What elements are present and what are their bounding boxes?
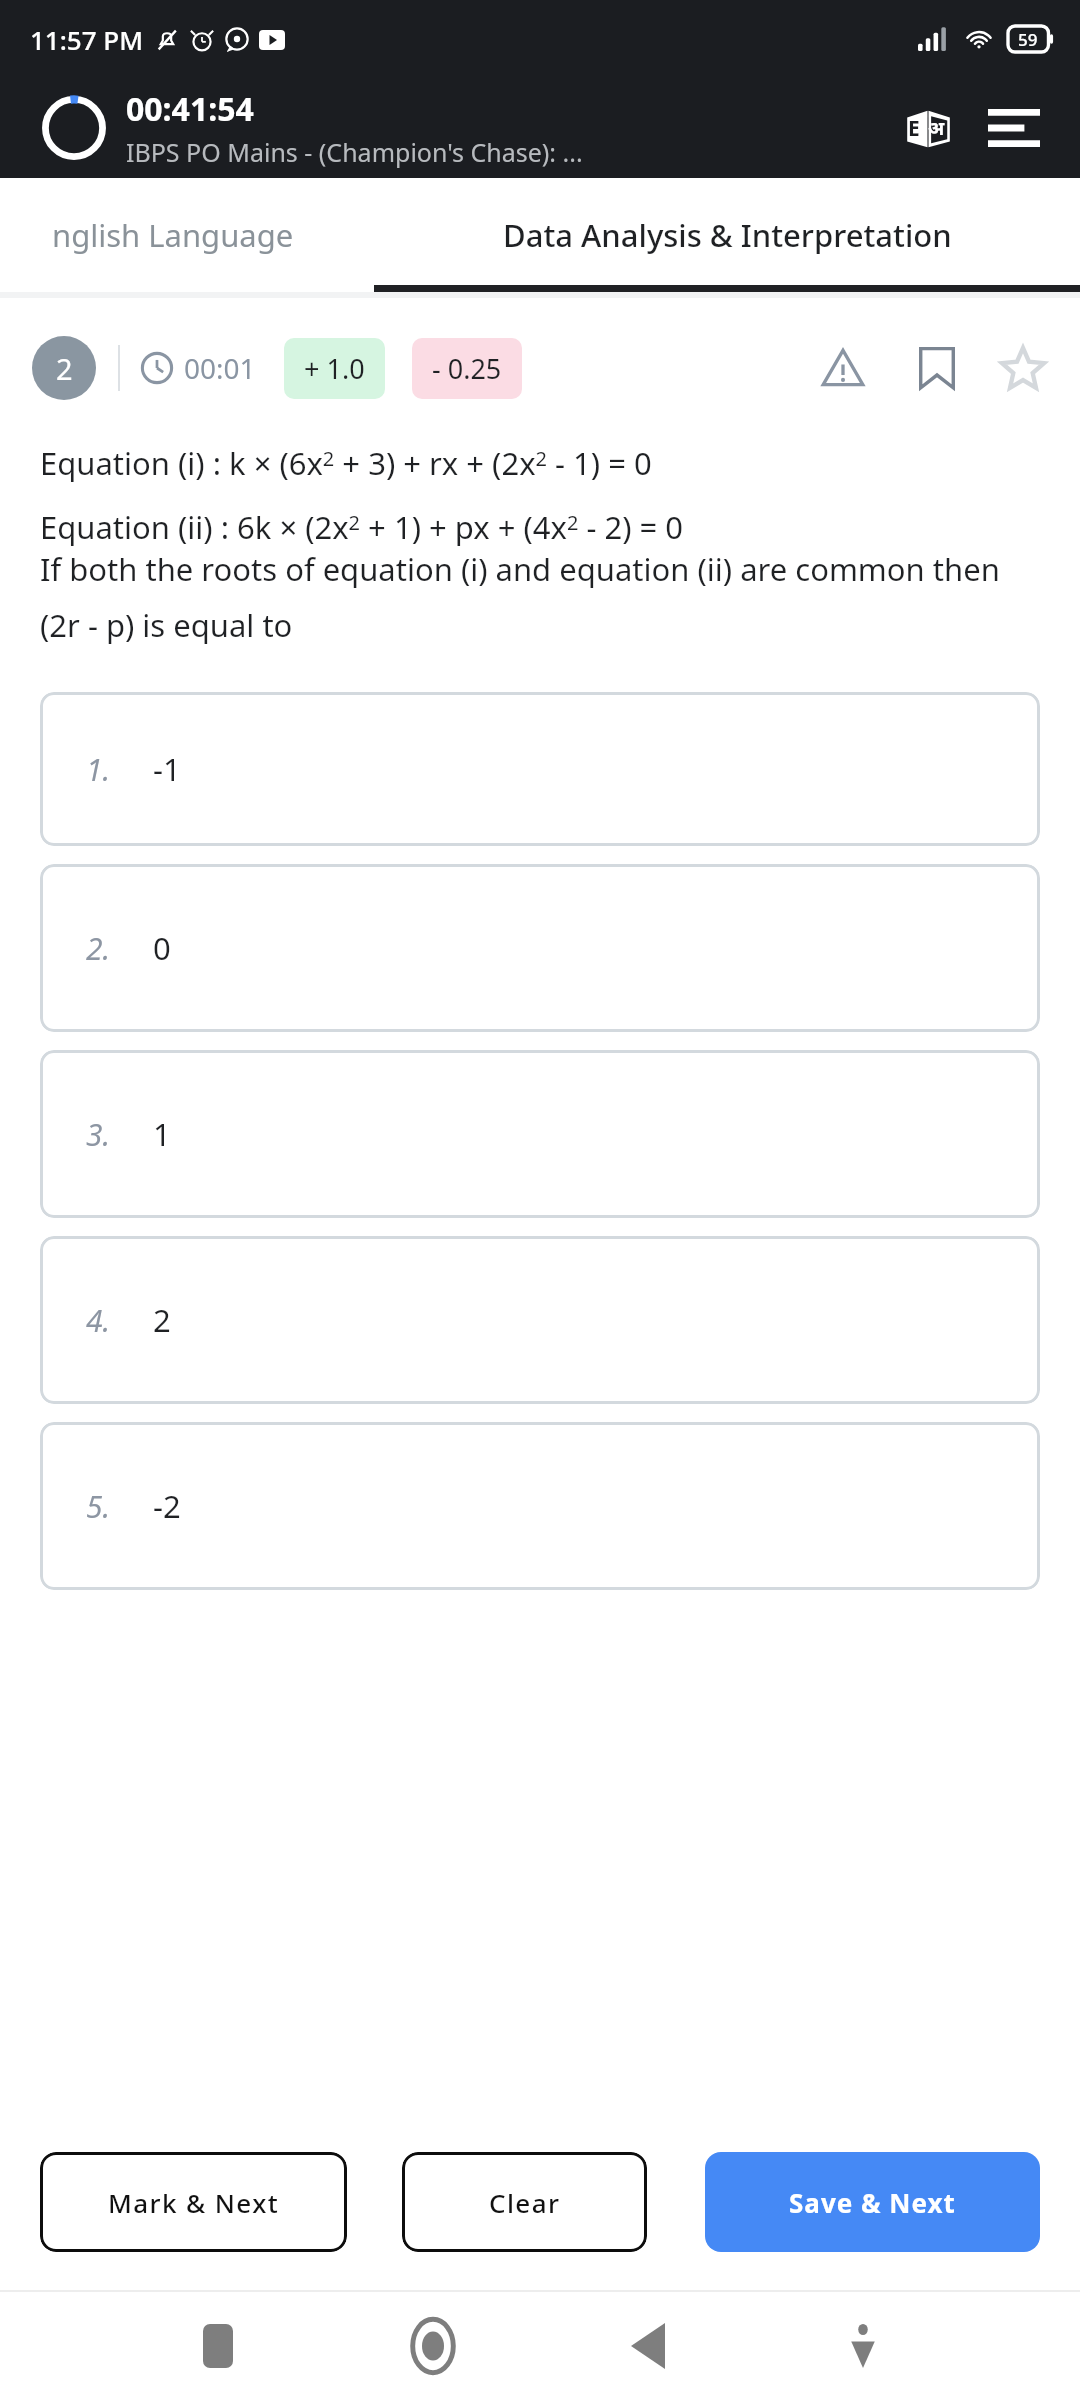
- button[interactable]: Clear: [402, 2152, 647, 2252]
- button[interactable]: Data Analysis & Interpretation: [374, 178, 1080, 292]
- staticText: nglish Language: [52, 214, 294, 256]
- button[interactable]: 1.: [40, 692, 1040, 846]
- staticText: 00:41:54: [126, 87, 254, 131]
- staticText: 00:01: [184, 349, 256, 387]
- button[interactable]: Favourite: [992, 337, 1054, 399]
- staticText: 1: [153, 1113, 171, 1155]
- staticText: IBPS PO Mains - (Champion's Chase): ...: [126, 135, 583, 169]
- button[interactable]: Report question: [812, 337, 874, 399]
- button[interactable]: Mark & Next: [40, 2152, 347, 2252]
- button[interactable]: 3.: [40, 1050, 1040, 1218]
- button[interactable]: Recents: [110, 2324, 325, 2368]
- button[interactable]: Menu: [982, 96, 1046, 160]
- staticText: Save & Next: [789, 2185, 956, 2220]
- button[interactable]: Save & Next: [705, 2152, 1040, 2252]
- staticText: Clear: [489, 2185, 561, 2220]
- staticText: अ: [928, 115, 945, 141]
- button[interactable]: 2.: [40, 864, 1040, 1032]
- staticText: If both the roots of equation (i) and eq…: [40, 548, 1040, 646]
- staticText: E: [908, 114, 920, 143]
- button[interactable]: nglish Language: [0, 178, 374, 292]
- staticText: + 1.0: [304, 350, 365, 387]
- staticText: 2: [153, 1299, 171, 1341]
- staticText: Data Analysis & Interpretation: [503, 214, 952, 256]
- staticText: -1: [153, 748, 181, 790]
- staticText: 3.: [86, 1114, 111, 1155]
- staticText: 2.: [86, 928, 111, 969]
- staticText: 1.: [86, 749, 111, 790]
- button[interactable]: Switch language: [896, 96, 960, 160]
- button[interactable]: Hide navigation bar: [755, 2324, 970, 2368]
- button[interactable]: Bookmark: [906, 337, 968, 399]
- staticText: - 0.25: [432, 350, 502, 387]
- staticText: 0: [153, 927, 171, 969]
- button[interactable]: 5.: [40, 1422, 1040, 1590]
- staticText: Mark & Next: [108, 2185, 280, 2220]
- button[interactable]: Back: [540, 2323, 755, 2369]
- button[interactable]: Home: [325, 2317, 540, 2375]
- staticText: Equation (i) : k × (6x2 + 3) + rx + (2x2…: [40, 442, 652, 484]
- staticText: 4.: [86, 1300, 111, 1341]
- staticText: 59: [1018, 28, 1038, 51]
- staticText: 11:57 PM: [30, 22, 144, 57]
- staticText: 5.: [86, 1486, 111, 1527]
- button[interactable]: 4.: [40, 1236, 1040, 1404]
- staticText: 2: [56, 349, 73, 388]
- staticText: -2: [153, 1485, 181, 1527]
- staticText: Equation (ii) : 6k × (2x2 + 1) + px + (4…: [40, 506, 684, 548]
